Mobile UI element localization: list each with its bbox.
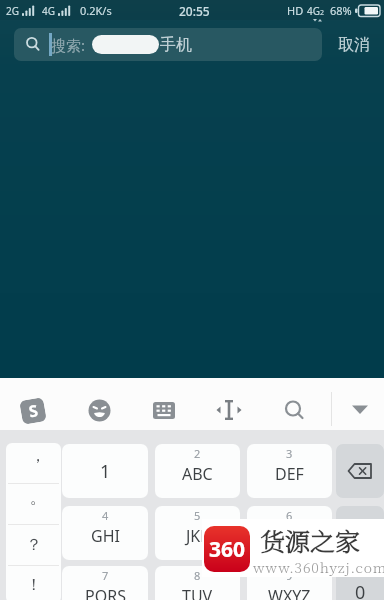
staticText: 20:55 (179, 3, 210, 19)
staticText: GHI (91, 525, 120, 547)
button[interactable] (351, 405, 369, 415)
button[interactable] (216, 398, 242, 422)
staticText: S (27, 399, 40, 422)
button[interactable]: 取消 (330, 32, 378, 58)
staticText: 6 (286, 508, 293, 523)
button[interactable] (153, 402, 175, 419)
staticText: 手机 (160, 35, 192, 55)
button[interactable]: 7 (62, 566, 148, 600)
staticText: MNO (270, 525, 310, 547)
staticText: 4G (307, 4, 320, 18)
button[interactable]: 5 (155, 506, 240, 560)
staticText: DEF (275, 463, 304, 485)
button[interactable]: ？ (6, 525, 61, 565)
staticText: 取消 (338, 35, 370, 55)
staticText: WXYZ (268, 585, 311, 600)
staticText: 2 (320, 8, 325, 18)
staticText: 9 (286, 568, 293, 583)
staticText: 2 (194, 446, 201, 461)
staticText: TUV (182, 585, 213, 600)
staticText: 4 (102, 508, 109, 523)
button[interactable]: 0 (336, 566, 384, 600)
staticText: HD (287, 3, 304, 18)
button[interactable] (336, 444, 384, 498)
staticText: 5 (194, 508, 201, 523)
staticText: PQRS (85, 585, 126, 600)
button[interactable] (88, 399, 111, 422)
staticText: 1 (100, 459, 111, 484)
staticText: ！ (26, 575, 42, 595)
button[interactable]: ， (6, 443, 61, 483)
button[interactable]: ！ (6, 566, 61, 600)
button[interactable]: 3 (247, 444, 332, 498)
button[interactable]: 2 (155, 444, 240, 498)
button[interactable]: 1 (62, 444, 148, 498)
staticText: 搜索: (51, 35, 86, 55)
staticText: 7 (102, 568, 109, 583)
button[interactable]: 8 (155, 566, 240, 600)
button[interactable]: 6 (247, 506, 332, 560)
staticText: 0.2K/s (80, 3, 112, 18)
button[interactable]: S (20, 398, 46, 424)
staticText: 3 (286, 446, 293, 461)
staticText: 4G (42, 4, 55, 18)
staticText: www.360hyzj.com (253, 557, 384, 577)
staticText: ， (30, 446, 46, 466)
staticText: JKL (186, 525, 209, 547)
button[interactable]: 。 (6, 484, 61, 524)
staticText: 8 (194, 568, 201, 583)
button[interactable]: 4 (62, 506, 148, 560)
staticText: ABC (182, 463, 213, 485)
button[interactable] (284, 400, 305, 421)
staticText: 货源之家 (260, 522, 361, 558)
staticText: 360 (209, 535, 246, 564)
staticText: 。 (30, 488, 46, 508)
staticText: 2G (6, 4, 19, 18)
button[interactable] (336, 506, 384, 560)
staticText: ？ (26, 535, 42, 555)
button[interactable]: 9 (247, 566, 332, 600)
staticText: 0 (355, 580, 366, 600)
staticText: 68% (330, 3, 352, 18)
button[interactable]: 搜索: (14, 28, 322, 61)
